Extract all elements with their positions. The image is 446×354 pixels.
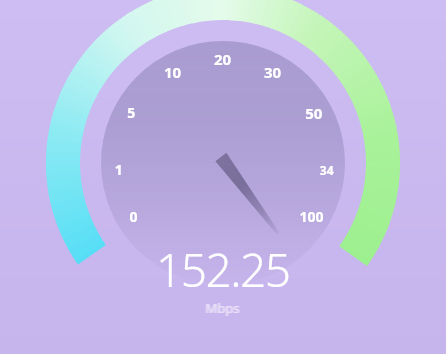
button[interactable]: Speed test gauge, 152.25 [0,0,446,354]
